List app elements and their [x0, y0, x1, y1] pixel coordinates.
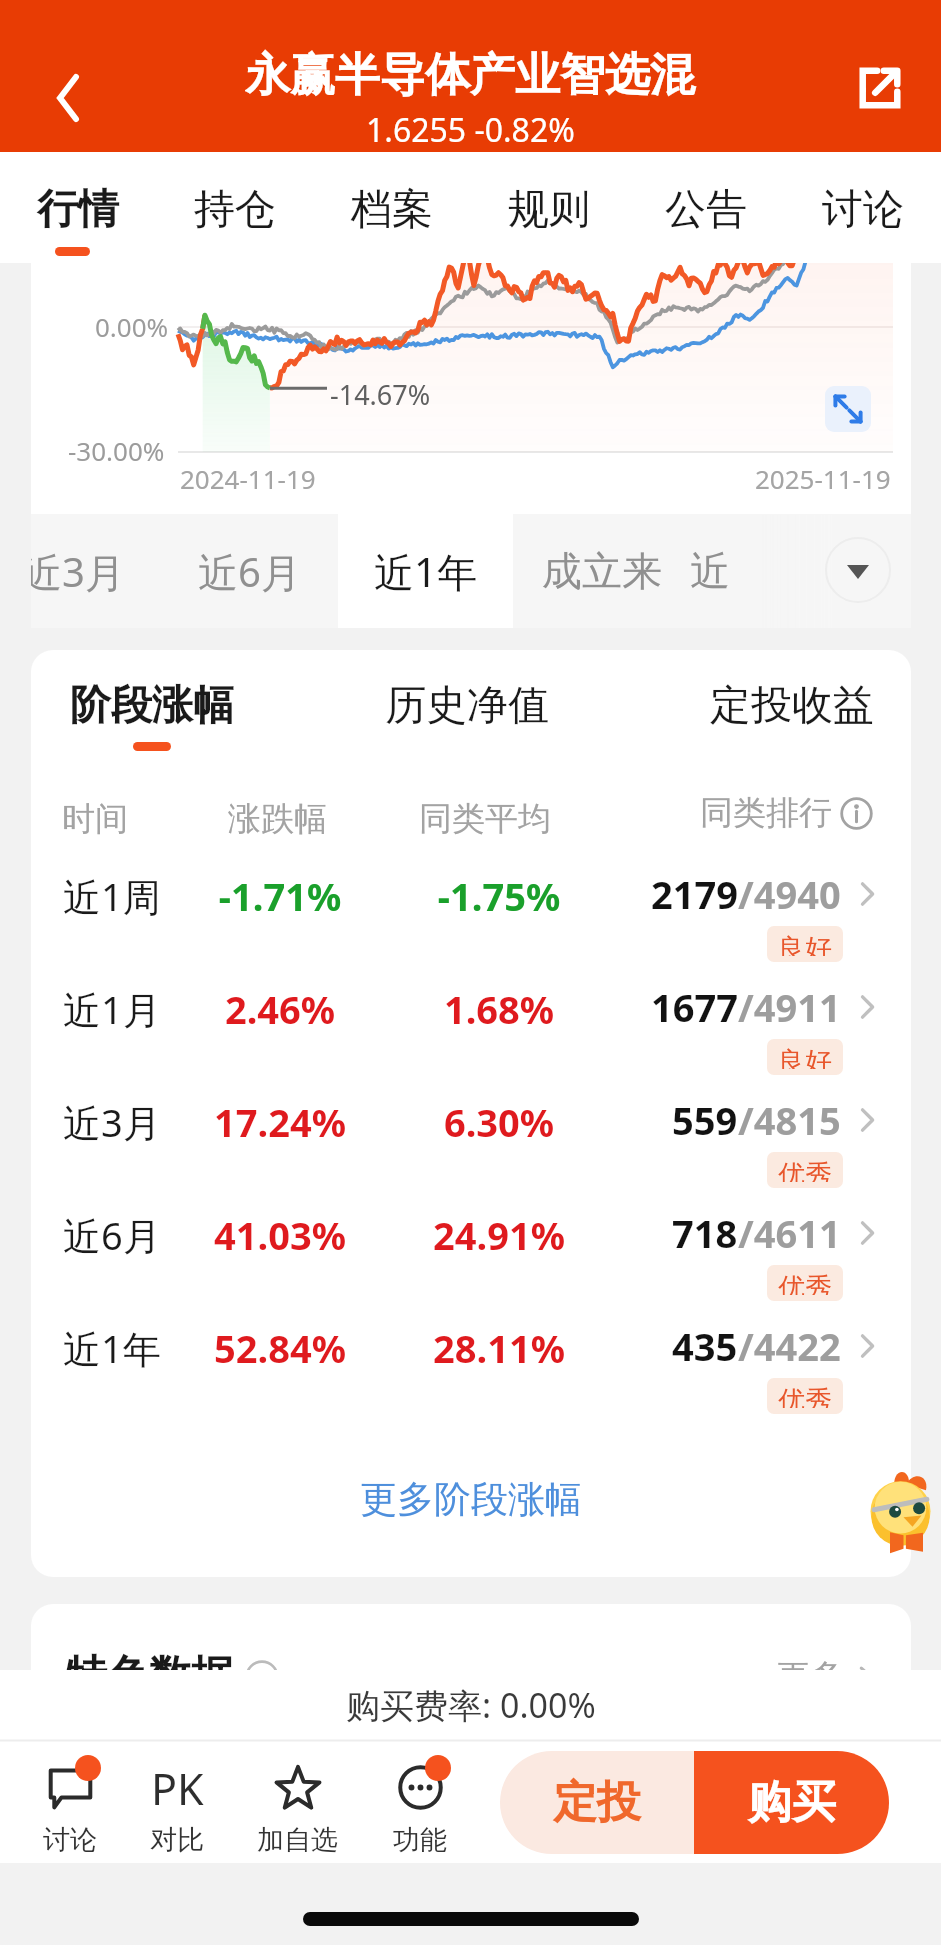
staticText: /4911 [738, 981, 841, 1033]
button[interactable]: 特色数据 [65, 1650, 279, 1703]
staticText: 近6月 [198, 544, 301, 599]
staticText: 28.11% [409, 1322, 589, 1374]
button[interactable]: 持仓 [156, 152, 313, 263]
staticText: 2024-11-19 [180, 461, 316, 496]
staticText: 加自选 [257, 1823, 338, 1857]
staticText: 718 [672, 1207, 738, 1259]
staticText: 行情 [37, 184, 119, 236]
staticText: 近3月 [63, 1096, 161, 1148]
staticText: 24.91% [409, 1209, 589, 1261]
staticText: 优秀 [778, 1384, 832, 1408]
staticText: 讨论 [822, 184, 904, 236]
button[interactable]: Fullscreen chart [825, 386, 871, 432]
staticText: 更多 [777, 1656, 843, 1698]
staticText: 公告 [665, 184, 747, 236]
button[interactable]: 公告 [627, 152, 784, 263]
button[interactable]: 讨论 [15, 1740, 125, 1863]
staticText: 购买 [748, 1775, 836, 1830]
staticText: 同类排行 [700, 792, 832, 834]
staticText: 阶段涨幅 [70, 680, 234, 732]
staticText: 涨跌幅 [228, 798, 327, 840]
staticText: 近1年 [374, 544, 477, 599]
staticText: 559 [672, 1094, 738, 1146]
staticText: 52.84% [190, 1322, 370, 1374]
staticText: 近6月 [63, 1209, 161, 1261]
staticText: /4940 [738, 868, 841, 920]
button[interactable]: 行情 [0, 152, 156, 263]
button[interactable]: 规则 [470, 152, 627, 263]
staticText: 2179 [651, 868, 738, 920]
button[interactable]: 近1年 [338, 514, 513, 628]
staticText: 2.46% [190, 983, 370, 1035]
staticText: 更多阶段涨幅 [360, 1476, 582, 1523]
staticText: 成立来 [542, 546, 662, 596]
staticText: /4611 [738, 1207, 841, 1259]
button[interactable]: Share [844, 52, 916, 124]
staticText: 近3月 [31, 544, 125, 599]
staticText: -1.75% [409, 870, 589, 922]
button[interactable]: 成立来 [514, 514, 689, 628]
staticText: 优秀 [778, 1271, 832, 1295]
staticText: 17.24% [190, 1096, 370, 1148]
staticText: -30.00% [68, 433, 165, 468]
staticText: 41.03% [190, 1209, 370, 1261]
button[interactable]: 近3月 [31, 514, 161, 628]
button[interactable]: More ranges [825, 537, 891, 603]
staticText: 对比 [150, 1823, 204, 1857]
staticText: 1.6255 -0.82% [366, 108, 575, 152]
button[interactable]: 近6月 [31, 1188, 911, 1301]
staticText: 功能 [393, 1823, 447, 1857]
button[interactable]: 近6月 [162, 514, 337, 628]
button[interactable]: PK [122, 1740, 232, 1863]
button[interactable]: 近1月 [31, 962, 911, 1075]
staticText: 0.00% [95, 309, 169, 344]
staticText: 近1月 [63, 983, 161, 1035]
staticText: 1677 [651, 981, 738, 1033]
staticText: -14.67% [330, 376, 431, 413]
staticText: 6.30% [409, 1096, 589, 1148]
staticText: -1.71% [190, 870, 370, 922]
button[interactable]: Back [30, 60, 106, 136]
staticText: 时间 [62, 798, 128, 840]
staticText: 435 [672, 1320, 738, 1372]
button[interactable]: 定投收益 [697, 650, 887, 754]
staticText: 历史净值 [385, 680, 549, 732]
staticText: 近2年 [690, 546, 711, 596]
button[interactable]: 定投 [500, 1751, 694, 1854]
button[interactable]: 加自选 [242, 1740, 352, 1863]
button[interactable]: Assistant [866, 1470, 941, 1592]
button[interactable]: 更多阶段涨幅 [31, 1476, 911, 1523]
staticText: 档案 [351, 184, 433, 236]
button[interactable]: 历史净值 [372, 650, 562, 754]
staticText: 特色数据 [65, 1650, 233, 1703]
staticText: 近1周 [63, 870, 161, 922]
button[interactable]: 近1年 [31, 1301, 911, 1414]
button[interactable]: 近2年 [690, 514, 711, 628]
staticText: 1.68% [409, 983, 589, 1035]
button[interactable]: 讨论 [784, 152, 941, 263]
staticText: 近1年 [63, 1322, 161, 1374]
staticText: /4422 [738, 1320, 841, 1372]
button[interactable]: 购买 [694, 1751, 889, 1854]
staticText: 定投 [553, 1775, 641, 1830]
staticText: /4815 [738, 1094, 841, 1146]
staticText: 永赢半导体产业智选混合/ [245, 47, 709, 104]
staticText: 持仓 [194, 184, 276, 236]
staticText: 定投收益 [710, 680, 874, 732]
staticText: 优秀 [778, 1158, 832, 1182]
staticText: 讨论 [43, 1823, 97, 1857]
staticText: 购买费率: 0.00% [346, 1682, 596, 1728]
button[interactable]: 功能 [365, 1740, 475, 1863]
staticText: 2025-11-19 [755, 461, 891, 496]
button[interactable]: 阶段涨幅 [57, 650, 247, 754]
staticText: 良好 [778, 932, 832, 956]
staticText: 规则 [508, 184, 590, 236]
button[interactable]: 更多 [777, 1656, 879, 1698]
staticText: 良好 [778, 1045, 832, 1069]
button[interactable]: 档案 [313, 152, 470, 263]
button[interactable]: 近1周 [31, 849, 911, 962]
button[interactable]: 近3月 [31, 1075, 911, 1188]
staticText: 同类平均 [419, 798, 551, 840]
staticText: PK [151, 1759, 204, 1812]
